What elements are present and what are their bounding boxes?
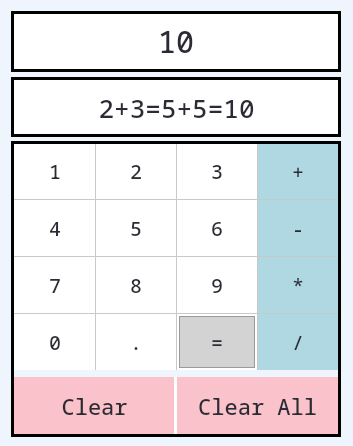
- staticText: *: [292, 272, 304, 299]
- button[interactable]: 2: [96, 144, 176, 199]
- staticText: 7: [49, 272, 61, 299]
- button[interactable]: 8: [96, 257, 176, 313]
- button[interactable]: 0: [14, 314, 95, 370]
- staticText: 10: [158, 21, 194, 62]
- staticText: .: [130, 329, 142, 356]
- button[interactable]: 2+3=5+5=10: [14, 80, 338, 134]
- staticText: 8: [130, 272, 142, 299]
- staticText: +: [292, 158, 304, 185]
- staticText: =: [211, 329, 223, 356]
- staticText: -: [292, 215, 304, 242]
- button[interactable]: 3: [177, 144, 257, 199]
- staticText: 4: [49, 215, 61, 242]
- button[interactable]: Divide: [258, 314, 338, 370]
- button[interactable]: 1: [14, 144, 95, 199]
- staticText: 2: [130, 158, 142, 185]
- button[interactable]: 7: [14, 257, 95, 313]
- button[interactable]: 10: [14, 14, 338, 69]
- staticText: 3: [211, 158, 223, 185]
- button[interactable]: .: [96, 314, 176, 370]
- button[interactable]: Clear All: [177, 377, 338, 434]
- button[interactable]: Clear: [14, 377, 174, 434]
- button[interactable]: Equals: [180, 317, 254, 367]
- staticText: 9: [211, 272, 223, 299]
- button[interactable]: 4: [14, 200, 95, 256]
- staticText: 5: [130, 215, 142, 242]
- button[interactable]: Minus: [258, 200, 338, 256]
- staticText: Clear: [61, 391, 128, 421]
- button[interactable]: 6: [177, 200, 257, 256]
- staticText: Clear All: [198, 391, 317, 421]
- staticText: 0: [49, 329, 61, 356]
- button[interactable]: 5: [96, 200, 176, 256]
- button[interactable]: Plus: [258, 144, 338, 199]
- button[interactable]: Multiply: [258, 257, 338, 313]
- button[interactable]: 9: [177, 257, 257, 313]
- staticText: 6: [211, 215, 223, 242]
- staticText: /: [292, 329, 304, 356]
- staticText: 1: [49, 158, 61, 185]
- staticText: 2+3=5+5=10: [98, 90, 255, 125]
